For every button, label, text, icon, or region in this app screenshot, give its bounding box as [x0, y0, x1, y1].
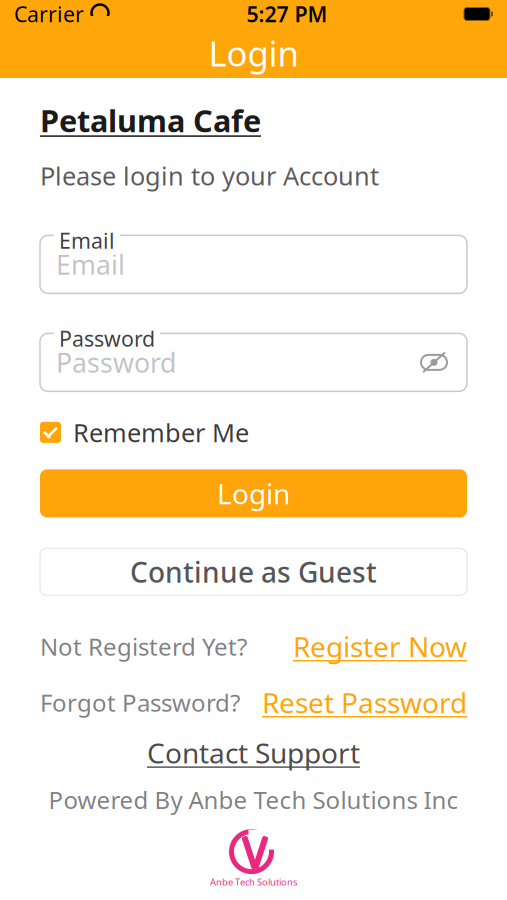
- staticText: Forgot Password?: [40, 686, 240, 718]
- staticText: Reset Password: [262, 684, 467, 721]
- button[interactable]: Continue as Guest: [40, 548, 467, 595]
- staticText: Email: [56, 247, 125, 282]
- button[interactable]: Register Now: [293, 628, 467, 665]
- button[interactable]: Show password: [417, 345, 451, 379]
- staticText: Powered By Anbe Tech Solutions Inc: [48, 784, 458, 816]
- staticText: Password: [59, 324, 155, 353]
- staticText: Register Now: [293, 628, 467, 665]
- staticText: Login: [217, 475, 290, 512]
- staticText: Carrier: [14, 0, 84, 28]
- staticText: Continue as Guest: [130, 553, 377, 590]
- staticText: Anbe Tech Solutions: [210, 876, 297, 888]
- staticText: Please login to your Account: [40, 159, 379, 192]
- staticText: Remember Me: [73, 415, 249, 449]
- staticText: 5:27 PM: [246, 0, 327, 28]
- button[interactable]: Remember Me: [40, 417, 467, 447]
- button[interactable]: Reset Password: [262, 684, 467, 721]
- button[interactable]: Contact Support: [40, 736, 467, 770]
- staticText: Petaluma Cafe: [40, 100, 261, 141]
- button[interactable]: Login: [40, 469, 467, 517]
- staticText: Not Registerd Yet?: [40, 630, 247, 662]
- staticText: Contact Support: [147, 734, 360, 771]
- staticText: Email: [59, 226, 115, 255]
- staticText: Password: [56, 345, 176, 380]
- staticText: Login: [208, 30, 298, 76]
